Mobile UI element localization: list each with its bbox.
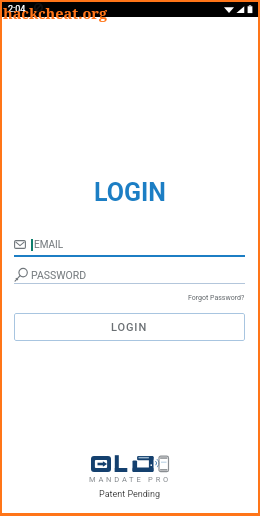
button[interactable]: EMAIL — [14, 237, 245, 252]
staticText: LOGIN — [111, 321, 148, 334]
staticText: EMAIL — [34, 239, 64, 251]
staticText: LOGIN — [2, 178, 258, 207]
button[interactable]: PASSWORD — [14, 267, 245, 282]
button[interactable]: LOGIN — [14, 313, 245, 341]
staticText: PASSWORD — [31, 269, 87, 281]
button[interactable]: Forgot Password? — [188, 294, 245, 302]
staticText: MANDATE PRO — [89, 475, 172, 484]
staticText: 2:04 — [8, 4, 26, 15]
staticText: Forgot Password? — [188, 294, 245, 302]
staticText: Patent Pending — [99, 489, 161, 500]
staticText: hackcheat.org — [3, 3, 108, 23]
